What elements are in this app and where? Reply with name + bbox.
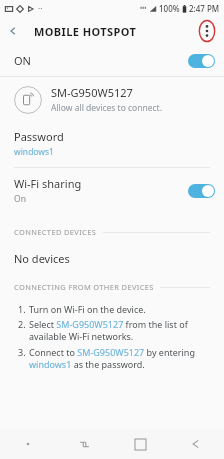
- staticText: 2.: [18, 318, 29, 330]
- button[interactable]: Home: [112, 429, 168, 459]
- button[interactable]: ON: [0, 45, 224, 76]
- button[interactable]: SM-G950W5127: [0, 77, 224, 122]
- button[interactable]: Back: [168, 429, 224, 459]
- staticText: MOBILE HOTSPOT: [34, 24, 137, 39]
- staticText: windows1: [14, 146, 54, 158]
- staticText: Select SM-G950W5127 from the list of ava…: [29, 318, 210, 343]
- button[interactable]: Menu indicator: [0, 429, 56, 459]
- staticText: CONNECTING FROM OTHER DEVICES: [14, 282, 154, 292]
- button[interactable]: Recents: [56, 429, 112, 459]
- staticText: Allow all devices to connect.: [51, 102, 162, 114]
- button[interactable]: More options: [194, 18, 220, 44]
- staticText: 100%: [159, 3, 180, 14]
- staticText: 2:47 PM: [189, 3, 220, 14]
- staticText: No devices: [14, 251, 70, 266]
- staticText: CONNECTED DEVICES: [14, 227, 97, 237]
- staticText: Wi-Fi sharing: [14, 176, 82, 191]
- staticText: ··: [38, 3, 43, 14]
- staticText: Turn on Wi-Fi on the device.: [29, 303, 146, 315]
- staticText: Password: [14, 129, 64, 144]
- staticText: ON: [14, 53, 31, 68]
- button[interactable]: Wi-Fi sharing: [0, 168, 224, 213]
- staticText: On: [14, 193, 26, 205]
- staticText: 3.: [18, 346, 29, 358]
- staticText: SM-G950W5127: [51, 85, 133, 100]
- button[interactable]: Password: [0, 122, 224, 167]
- staticText: Connect to SM-G950W5127 by entering wind…: [29, 346, 210, 371]
- staticText: 1.: [18, 303, 29, 315]
- button[interactable]: Back: [0, 18, 26, 44]
